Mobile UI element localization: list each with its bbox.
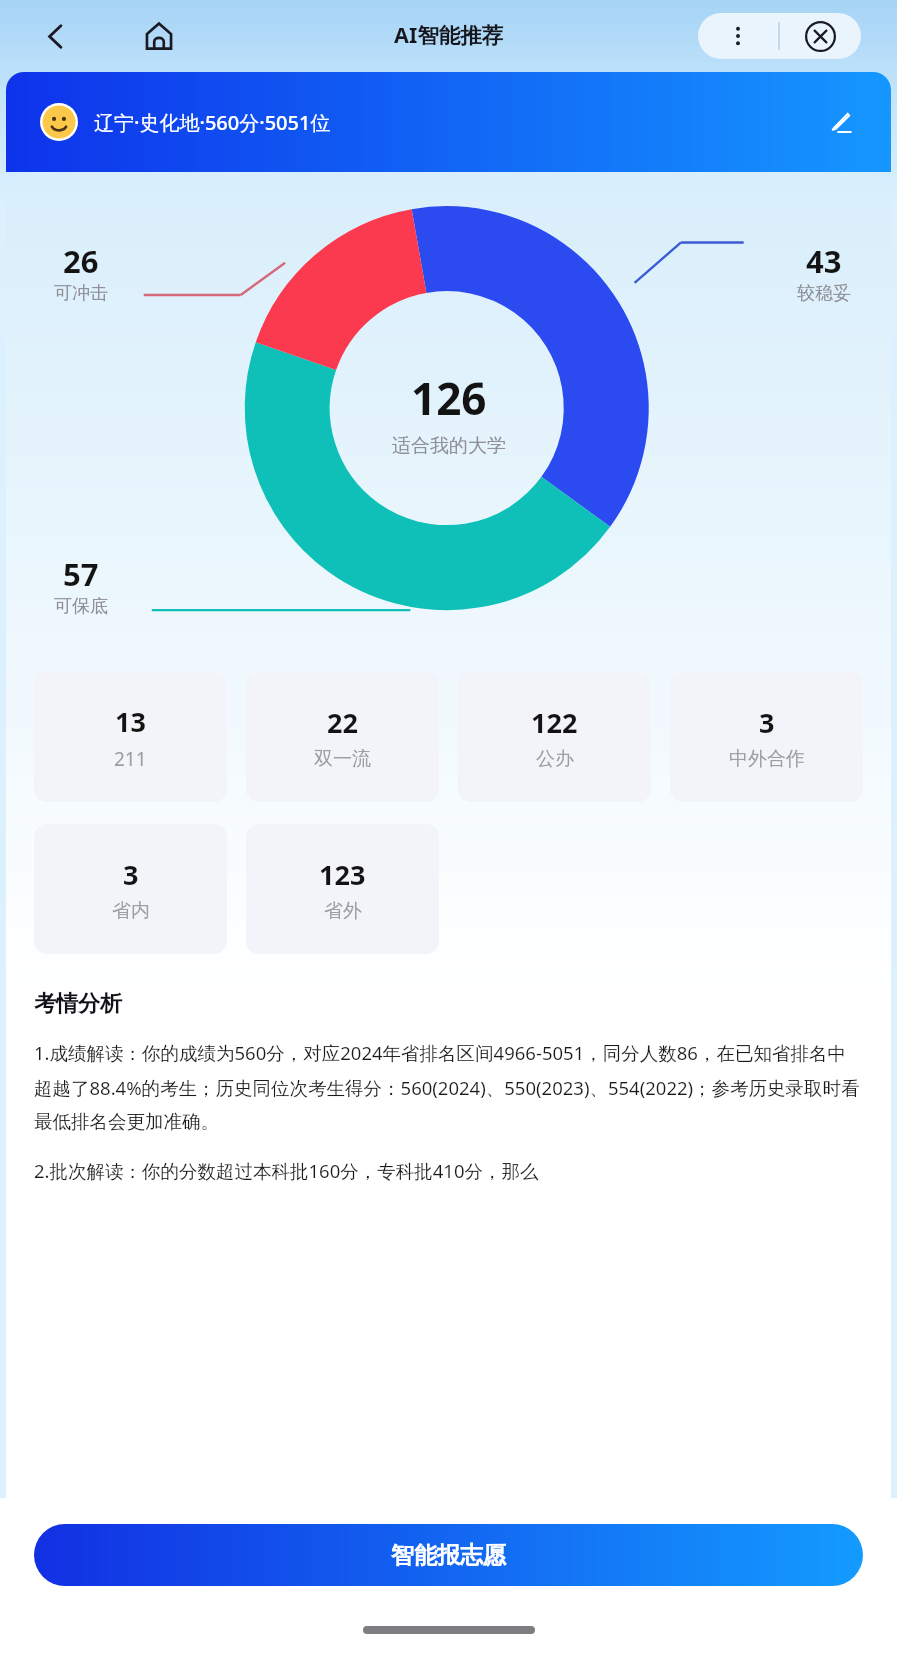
staticText: AI智能推荐 <box>394 20 504 49</box>
button[interactable]: 22 <box>246 672 439 802</box>
button[interactable]: Close <box>780 13 861 59</box>
staticText: 122 <box>531 704 578 741</box>
staticText: 123 <box>319 856 366 893</box>
staticText: 126 <box>411 368 487 428</box>
staticText: 中外合作 <box>729 747 805 771</box>
staticText: 省内 <box>112 899 150 923</box>
button[interactable]: More options <box>698 13 778 59</box>
staticText: 22 <box>327 704 358 741</box>
staticText: 双一流 <box>314 747 371 771</box>
staticText: 辽宁·史化地·560分·5051位 <box>94 109 331 136</box>
staticText: 2.批次解读：你的分数超过本科批160分，专科批410分，那么 <box>34 1158 539 1183</box>
staticText: 3 <box>123 856 139 893</box>
staticText: 211 <box>114 746 147 772</box>
button[interactable]: Edit <box>819 101 861 143</box>
staticText: 43 <box>806 240 842 282</box>
staticText: 公办 <box>536 747 574 771</box>
button[interactable]: 13 <box>34 672 227 802</box>
staticText: 考情分析 <box>34 990 122 1018</box>
staticText: 可保底 <box>54 595 108 618</box>
button[interactable]: 122 <box>458 672 651 802</box>
staticText: 57 <box>63 553 99 595</box>
staticText: 省外 <box>324 899 362 923</box>
staticText: 13 <box>115 703 146 740</box>
button[interactable]: 3 <box>670 672 863 802</box>
staticText: 3 <box>759 704 775 741</box>
staticText: 26 <box>63 240 99 282</box>
button[interactable]: Home <box>134 11 184 61</box>
button[interactable]: 123 <box>246 824 439 954</box>
button[interactable]: 辽宁·史化地·560分·5051位 <box>6 72 891 172</box>
button[interactable]: 3 <box>34 824 227 954</box>
staticText: 1.成绩解读：你的成绩为560分，对应2024年省排名区间4966-5051，同… <box>34 1040 863 1134</box>
button[interactable]: Back <box>30 11 80 61</box>
staticText: 可冲击 <box>54 282 108 305</box>
button[interactable]: 智能报志愿 <box>34 1524 863 1586</box>
staticText: 较稳妥 <box>797 282 851 305</box>
staticText: 智能报志愿 <box>391 1541 506 1570</box>
staticText: 适合我的大学 <box>392 434 506 458</box>
